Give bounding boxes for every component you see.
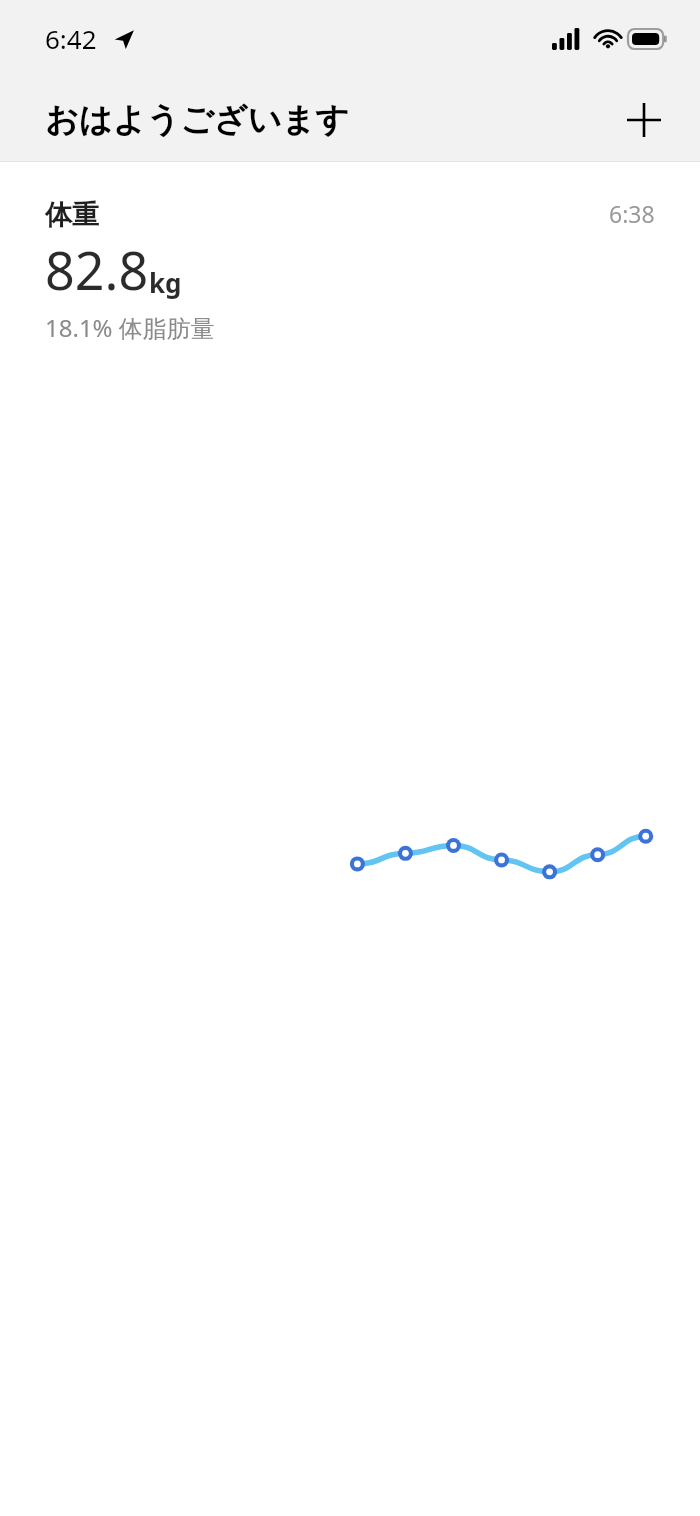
staticText: 82.8 — [45, 234, 149, 305]
staticText: 6:42 — [45, 21, 97, 56]
staticText: 体重 — [45, 198, 99, 232]
button[interactable]: 体重 — [0, 162, 700, 1516]
button[interactable]: Add — [616, 92, 672, 148]
staticText: おはようございます — [45, 99, 349, 141]
staticText: 6:38 — [609, 198, 655, 229]
staticText: kg — [149, 265, 182, 300]
staticText: 18.1% 体脂肪量 — [45, 311, 215, 344]
